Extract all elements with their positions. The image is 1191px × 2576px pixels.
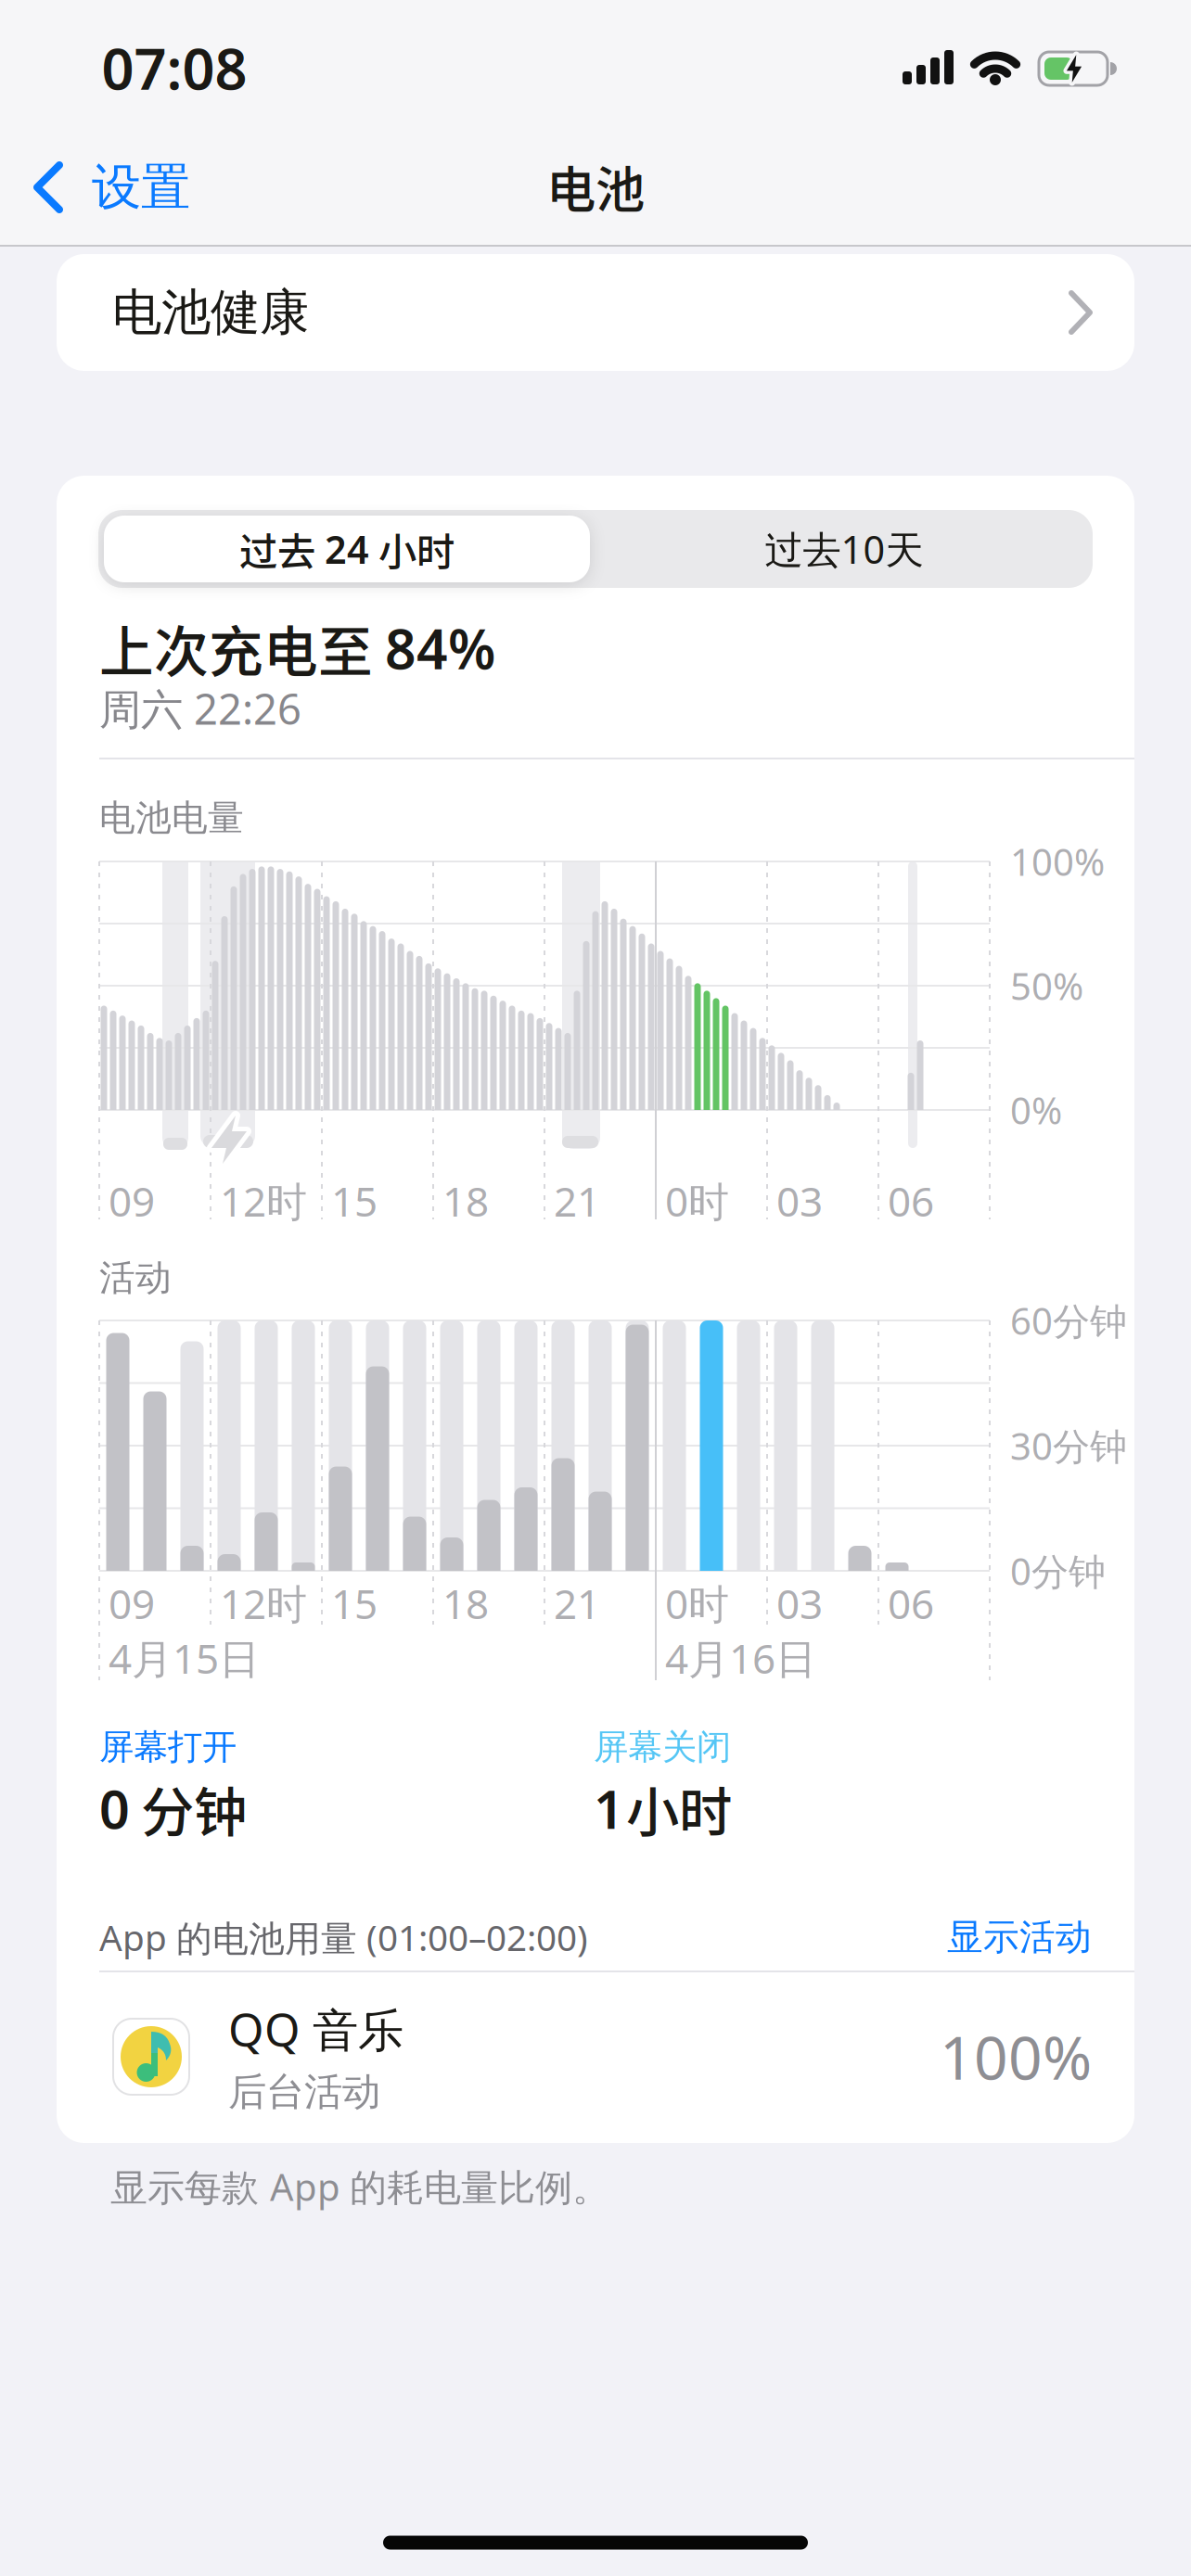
staticText: 84%	[385, 612, 495, 684]
staticText: 06	[888, 1174, 934, 1228]
staticText: 分钟	[141, 1770, 247, 1847]
staticText: 12时	[220, 1174, 307, 1228]
staticText: App 的电池用量 (01:00–02:00)	[99, 1913, 588, 1961]
button[interactable]: 设置	[32, 158, 190, 217]
staticText: 100%	[940, 2017, 1092, 2096]
staticText: 21	[554, 1174, 600, 1228]
staticText: 4月16日	[665, 1631, 816, 1685]
staticText: 0时	[665, 1174, 729, 1228]
staticText: 小时	[378, 521, 455, 577]
staticText: 09	[109, 1576, 155, 1630]
staticText: 03	[776, 1576, 823, 1630]
staticText: 小时	[626, 1770, 732, 1847]
staticText: 15	[331, 1576, 378, 1630]
staticText: 显示每款 App 的耗电量比例。	[110, 2162, 609, 2211]
staticText: 50%	[1010, 961, 1083, 1010]
button[interactable]: 过去10天	[601, 516, 1087, 582]
staticText: 设置	[92, 157, 190, 218]
button[interactable]: 显示活动	[947, 1915, 1092, 1959]
staticText: 上次充电至	[99, 609, 373, 688]
staticText: 30分钟	[1010, 1421, 1127, 1470]
staticText: 60分钟	[1010, 1296, 1127, 1345]
staticText: 周六 22:26	[99, 681, 301, 736]
staticText: 0分钟	[1010, 1546, 1106, 1595]
staticText: 21	[554, 1576, 600, 1630]
staticText: 0时	[665, 1576, 729, 1630]
staticText: 屏幕关闭	[594, 1726, 731, 1768]
button[interactable]: QQ 音乐	[99, 1978, 1134, 2136]
staticText: 18	[442, 1174, 489, 1228]
staticText: QQ 音乐	[228, 1998, 403, 2059]
staticText: 1	[594, 1773, 624, 1843]
staticText: 电池电量	[99, 796, 244, 840]
staticText: 屏幕打开	[99, 1726, 237, 1768]
staticText: 后台活动	[228, 2068, 380, 2115]
staticText: 09	[109, 1174, 155, 1228]
staticText: 电池	[546, 151, 645, 222]
staticText: 12时	[220, 1576, 307, 1630]
staticText: 0%	[1010, 1085, 1062, 1135]
button[interactable]: 电池健康	[57, 254, 1134, 371]
staticText: 24	[325, 524, 369, 574]
button[interactable]: 过去	[104, 516, 590, 582]
staticText: 显示活动	[947, 1915, 1092, 1959]
staticText: 03	[776, 1174, 823, 1228]
staticText: 0	[99, 1773, 130, 1843]
staticText: 过去	[239, 521, 315, 577]
staticText: 4月15日	[109, 1631, 260, 1685]
staticText: 100%	[1010, 837, 1105, 886]
staticText: 15	[331, 1174, 378, 1228]
staticText: 06	[888, 1576, 934, 1630]
staticText: 活动	[99, 1256, 172, 1300]
staticText: 电池健康	[112, 282, 309, 343]
staticText: 过去10天	[765, 524, 923, 574]
staticText: 07:08	[102, 30, 247, 105]
staticText: 18	[442, 1576, 489, 1630]
